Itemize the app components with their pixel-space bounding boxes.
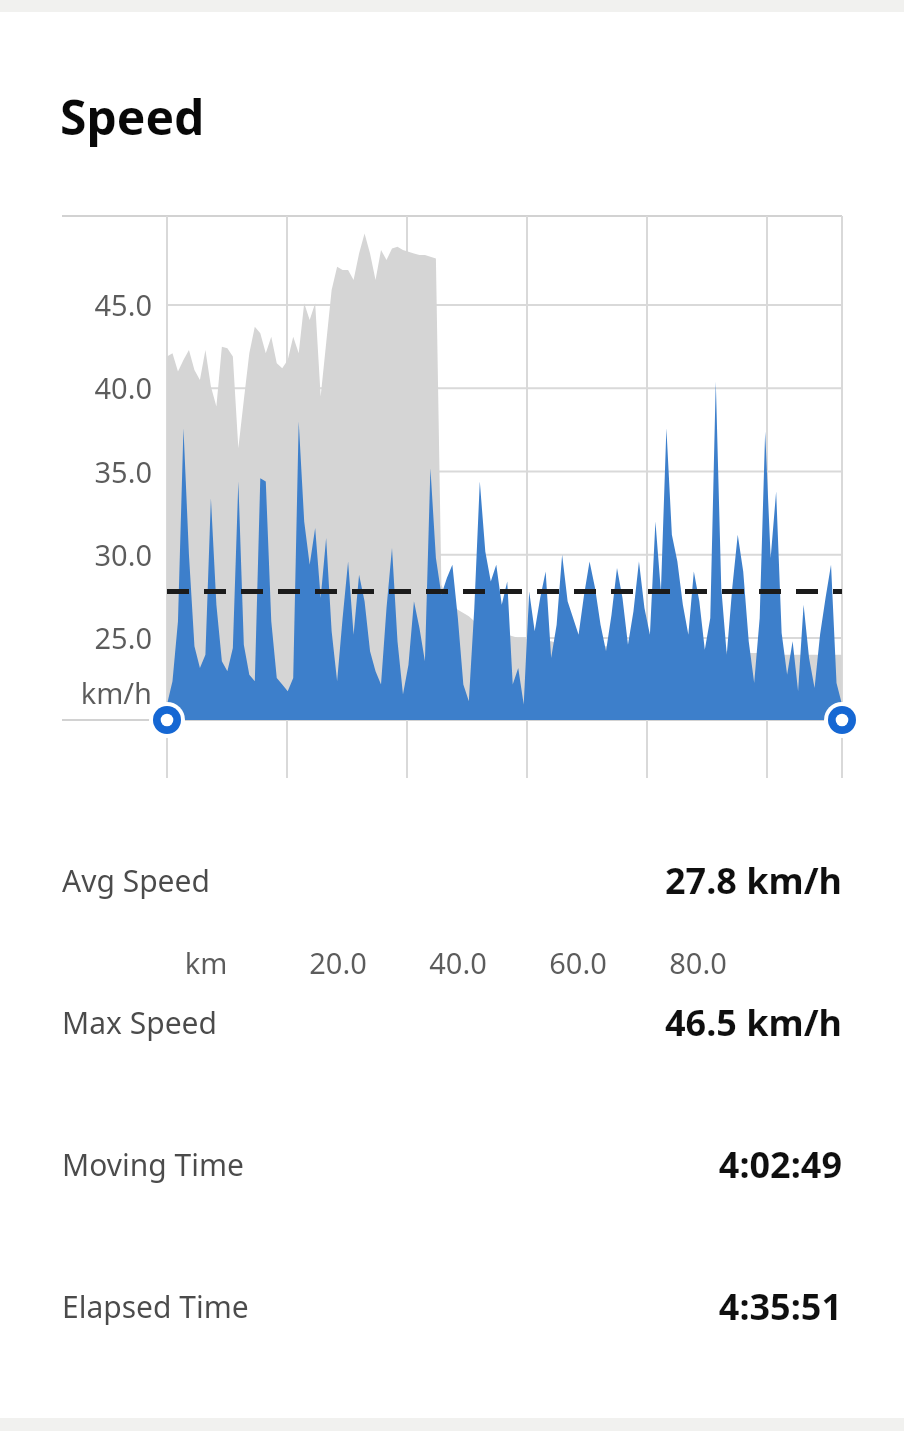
staticText: 4:02:49 <box>718 1140 842 1189</box>
button[interactable]: Moving Time <box>0 1093 904 1235</box>
staticText: Max Speed <box>62 1002 217 1043</box>
staticText: Speed <box>60 84 205 149</box>
button[interactable]: Elapsed Time <box>0 1235 904 1377</box>
staticText: 30.0 <box>0 535 152 574</box>
staticText: 40.0 <box>0 368 152 407</box>
staticText: Moving Time <box>62 1144 244 1185</box>
staticText: Avg Speed <box>62 860 210 901</box>
staticText: Elapsed Time <box>62 1286 249 1327</box>
staticText: 4:35:51 <box>718 1282 842 1331</box>
staticText: 45.0 <box>0 285 152 324</box>
staticText: 35.0 <box>0 452 152 491</box>
staticText: 40.0 <box>398 943 518 982</box>
staticText: 20.0 <box>278 943 398 982</box>
button[interactable]: Avg Speed <box>0 809 904 951</box>
staticText: km/h <box>0 673 152 712</box>
staticText: 46.5 km/h <box>664 998 842 1047</box>
staticText: 25.0 <box>0 618 152 657</box>
staticText: 80.0 <box>638 943 758 982</box>
staticText: 60.0 <box>518 943 638 982</box>
staticText: 27.8 km/h <box>664 856 842 905</box>
staticText: km <box>146 943 266 982</box>
button[interactable]: Max Speed <box>0 951 904 1093</box>
button[interactable]: Speed over distance chart <box>0 204 904 804</box>
